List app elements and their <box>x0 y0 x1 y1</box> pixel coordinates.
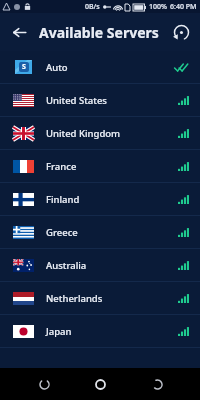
button[interactable]: Back <box>144 371 170 397</box>
button[interactable]: S <box>0 51 200 83</box>
staticText: S <box>22 62 26 72</box>
button[interactable]: United Kingdom <box>0 117 200 149</box>
button[interactable]: Japan <box>0 315 200 347</box>
button[interactable]: Recents <box>31 371 57 397</box>
button[interactable]: Home <box>87 371 113 397</box>
staticText: 0B/s <box>85 2 100 12</box>
button[interactable]: Netherlands <box>0 282 200 314</box>
button[interactable]: Back <box>4 17 34 47</box>
staticText: Netherlands <box>46 292 178 305</box>
staticText: 100% <box>149 2 167 12</box>
staticText: Australia <box>46 259 178 272</box>
staticText: Auto <box>46 61 174 74</box>
staticText: 6:40 PM <box>170 2 197 12</box>
staticText: Japan <box>46 325 178 338</box>
staticText: Greece <box>46 226 178 239</box>
button[interactable]: Refresh <box>167 18 195 46</box>
staticText: France <box>46 160 178 173</box>
staticText: Finland <box>46 193 178 206</box>
staticText: United States <box>46 94 178 107</box>
button[interactable]: Australia <box>0 249 200 281</box>
button[interactable]: Finland <box>0 183 200 215</box>
button[interactable]: United States <box>0 84 200 116</box>
staticText: United Kingdom <box>46 127 178 140</box>
button[interactable]: Greece <box>0 216 200 248</box>
staticText: Available Servers <box>39 23 159 42</box>
button[interactable]: France <box>0 150 200 182</box>
